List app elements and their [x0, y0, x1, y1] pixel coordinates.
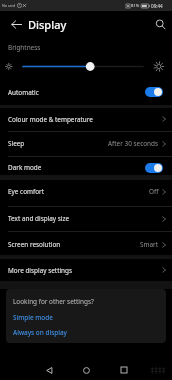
- button[interactable]: Search: [151, 15, 169, 33]
- button[interactable]: Home: [75, 359, 97, 380]
- staticText: Sleep: [8, 139, 25, 148]
- staticText: Automatic: [8, 88, 39, 97]
- button[interactable]: Toggle: [145, 163, 163, 173]
- staticText: Looking for other settings?: [13, 297, 94, 306]
- button[interactable]: Colour mode & temperature: [0, 107, 172, 131]
- button[interactable]: Toggle: [145, 87, 163, 97]
- staticText: Dark mode: [8, 163, 42, 172]
- staticText: Off: [149, 187, 159, 196]
- staticText: Eye comfort: [8, 187, 44, 196]
- button[interactable]: Eye comfort: [0, 179, 172, 204]
- staticText: Smart: [140, 240, 159, 249]
- button[interactable]: Simple mode: [6, 311, 166, 325]
- staticText: Simple mode: [13, 313, 53, 322]
- staticText: More display settings: [8, 266, 73, 275]
- staticText: Screen resolution: [8, 240, 61, 249]
- button[interactable]: Recent apps: [113, 359, 135, 380]
- button[interactable]: Sleep: [0, 132, 172, 155]
- button[interactable]: Back: [38, 359, 60, 380]
- staticText: No card: [2, 3, 16, 8]
- button[interactable]: Text and display size: [0, 206, 172, 231]
- button[interactable]: Dark mode: [0, 156, 172, 179]
- button[interactable]: Back: [7, 15, 25, 33]
- staticText: 81%: [131, 3, 140, 9]
- button[interactable]: Screen resolution: [0, 232, 172, 257]
- staticText: Text and display size: [8, 214, 70, 223]
- button[interactable]: Always on display: [6, 326, 166, 340]
- staticText: Colour mode & temperature: [8, 115, 93, 124]
- staticText: 09:44: [151, 3, 163, 9]
- button[interactable]: More display settings: [0, 259, 172, 281]
- staticText: Always on display: [13, 328, 67, 337]
- button[interactable]: Automatic: [0, 81, 172, 103]
- staticText: Brightness: [8, 43, 41, 52]
- staticText: Display: [28, 17, 67, 32]
- staticText: After 30 seconds: [108, 139, 159, 148]
